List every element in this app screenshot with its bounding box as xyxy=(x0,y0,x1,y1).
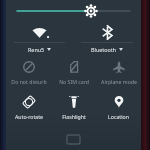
button[interactable]: Collapse quick settings xyxy=(6,130,141,148)
staticText: No SIM card xyxy=(59,78,89,85)
button[interactable]: Flashlight xyxy=(51,92,96,120)
staticText: Bluetooth xyxy=(91,46,117,53)
button[interactable]: Do not disturb xyxy=(6,57,51,85)
button[interactable]: Bluetooth xyxy=(73,23,141,53)
staticText: Renu5 xyxy=(28,46,45,53)
button[interactable]: Location xyxy=(96,92,141,120)
staticText: Location xyxy=(108,113,129,120)
staticText: Do not disturb xyxy=(11,78,47,85)
staticText: Flashlight xyxy=(62,113,86,120)
button[interactable]: Airplane mode xyxy=(96,57,141,85)
button[interactable]: No SIM card xyxy=(51,57,96,85)
button[interactable]: Wi-Fi xyxy=(6,23,73,53)
button[interactable]: Brightness xyxy=(6,4,141,18)
staticText: Airplane mode xyxy=(101,78,137,85)
staticText: Auto-rotate xyxy=(15,113,43,120)
button[interactable]: Auto-rotate xyxy=(6,92,51,120)
